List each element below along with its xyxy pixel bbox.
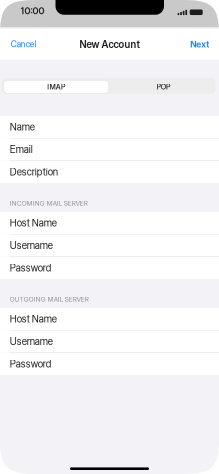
staticText: Name xyxy=(10,121,35,133)
button[interactable]: Cancel xyxy=(0,29,37,60)
button[interactable]: Description xyxy=(0,161,219,183)
button[interactable]: Host Name xyxy=(0,308,219,330)
button[interactable]: Username xyxy=(0,234,219,256)
staticText: Host Name xyxy=(10,217,57,229)
button[interactable]: Name xyxy=(0,116,219,138)
staticText: Username xyxy=(10,239,53,251)
button[interactable]: Email xyxy=(0,138,219,160)
button[interactable]: Host Name xyxy=(0,212,219,234)
staticText: New Account xyxy=(79,38,139,50)
button[interactable]: Password xyxy=(0,257,219,279)
staticText: Password xyxy=(10,262,52,274)
staticText: Password xyxy=(10,358,52,370)
button[interactable]: POP xyxy=(110,80,216,94)
button[interactable]: IMAP xyxy=(3,80,109,94)
staticText: OUTGOING MAIL SERVER xyxy=(10,295,89,303)
staticText: Description xyxy=(10,166,58,178)
staticText: POP xyxy=(156,83,170,91)
button[interactable]: Next xyxy=(190,29,219,60)
staticText: Username xyxy=(10,335,53,347)
button[interactable]: Username xyxy=(0,330,219,352)
staticText: Email xyxy=(10,143,33,155)
staticText: 10:00 xyxy=(21,5,45,16)
staticText: INCOMING MAIL SERVER xyxy=(10,199,88,207)
staticText: IMAP xyxy=(47,83,65,91)
button[interactable]: Password xyxy=(0,353,219,375)
staticText: Host Name xyxy=(10,313,57,325)
staticText: Cancel xyxy=(11,39,37,49)
staticText: Next xyxy=(190,39,209,50)
